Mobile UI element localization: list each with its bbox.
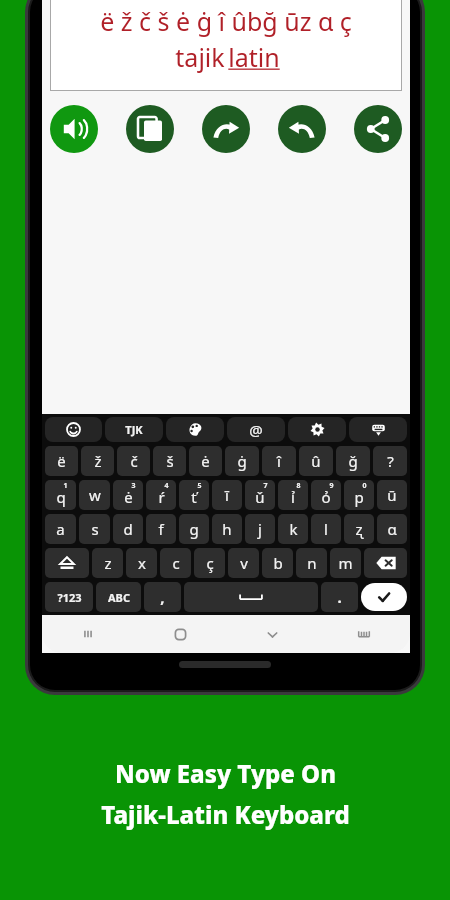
button[interactable]: 5	[179, 480, 209, 510]
staticText: ç	[206, 553, 214, 573]
staticText: s	[91, 519, 99, 539]
staticText: m	[338, 553, 353, 573]
button[interactable]: Emoji	[45, 417, 102, 442]
staticText: ū	[387, 485, 397, 505]
button[interactable]: j	[245, 514, 275, 544]
button[interactable]: z	[92, 548, 123, 578]
button[interactable]: f	[146, 514, 176, 544]
button[interactable]: Settings	[288, 417, 346, 442]
button[interactable]: a	[45, 514, 76, 544]
button[interactable]: 0	[344, 480, 374, 510]
button[interactable]: ğ	[336, 446, 370, 476]
staticText: ʐ	[355, 519, 363, 539]
button[interactable]: 1	[45, 480, 76, 510]
staticText: ABC	[108, 590, 130, 605]
button[interactable]: î	[262, 446, 296, 476]
button[interactable]: At sign	[227, 417, 285, 442]
button[interactable]: ʐ	[344, 514, 374, 544]
staticText: č	[130, 451, 138, 471]
staticText: š	[166, 451, 174, 471]
button[interactable]: Backspace	[364, 548, 407, 578]
staticText: ɑ	[387, 519, 397, 539]
staticText: ǔ	[255, 487, 265, 507]
button[interactable]: h	[212, 514, 242, 544]
button[interactable]: ġ	[225, 446, 259, 476]
staticText: 8	[296, 481, 301, 491]
staticText: ž	[94, 451, 102, 471]
staticText: ŕ	[158, 487, 165, 507]
button[interactable]: Speak	[50, 105, 98, 153]
button[interactable]: ž	[81, 446, 114, 476]
button[interactable]: b	[262, 548, 293, 578]
button[interactable]: ī	[212, 480, 242, 510]
button[interactable]: ė	[189, 446, 222, 476]
button[interactable]: ɑ	[377, 514, 407, 544]
staticText: ?123	[57, 590, 82, 605]
staticText: ġ	[237, 451, 247, 471]
button[interactable]: x	[126, 548, 157, 578]
staticText: ğ	[348, 451, 358, 471]
button[interactable]: 8	[278, 480, 308, 510]
button[interactable]: k	[278, 514, 308, 544]
staticText: ī	[225, 485, 229, 505]
button[interactable]: ū	[377, 480, 407, 510]
button[interactable]: w	[79, 480, 110, 510]
button[interactable]: Redo	[202, 105, 250, 153]
button[interactable]: s	[79, 514, 110, 544]
button[interactable]: Theme	[166, 417, 224, 442]
staticText: ť	[191, 487, 197, 507]
button[interactable]: Back	[226, 615, 318, 653]
button[interactable]: 4	[146, 480, 176, 510]
staticText: k	[289, 519, 298, 539]
button[interactable]: 3	[113, 480, 143, 510]
button[interactable]: v	[228, 548, 259, 578]
button[interactable]: Share	[354, 105, 402, 153]
button[interactable]: Hide keyboard	[349, 417, 407, 442]
button[interactable]: Period	[321, 582, 358, 612]
button[interactable]: 9	[311, 480, 341, 510]
staticText: p	[354, 487, 364, 507]
button[interactable]: ë ž č š ė ġ î ûbğ ūz ɑ ç	[50, 0, 402, 91]
button[interactable]: 7	[245, 480, 275, 510]
button[interactable]: n	[296, 548, 327, 578]
staticText: a	[56, 519, 65, 539]
staticText: z	[104, 553, 112, 573]
button[interactable]: Enter	[361, 583, 407, 611]
staticText: j	[258, 519, 262, 539]
button[interactable]: l	[311, 514, 341, 544]
staticText: ë ž č š ė ġ î ûbğ ūz ɑ ç	[100, 4, 352, 38]
staticText: n	[307, 553, 317, 573]
button[interactable]: Shift	[45, 548, 89, 578]
staticText: f	[158, 519, 164, 539]
staticText: ë	[57, 451, 66, 471]
button[interactable]: Symbols	[45, 582, 93, 612]
staticText: 1	[63, 481, 68, 491]
button[interactable]: ?	[373, 446, 407, 476]
button[interactable]: Copy	[126, 105, 174, 153]
staticText: c	[172, 553, 180, 573]
button[interactable]: d	[113, 514, 143, 544]
button[interactable]: š	[153, 446, 186, 476]
staticText: .	[337, 587, 342, 607]
button[interactable]: ç	[194, 548, 225, 578]
button[interactable]: Recents	[42, 615, 134, 653]
button[interactable]: m	[330, 548, 361, 578]
staticText: w	[89, 485, 101, 505]
staticText: g	[189, 519, 199, 539]
button[interactable]: Undo	[278, 105, 326, 153]
button[interactable]: Language	[105, 417, 163, 442]
button[interactable]: ABC	[96, 582, 141, 612]
staticText: d	[123, 519, 133, 539]
staticText: Now Easy Type On	[115, 757, 336, 790]
button[interactable]: č	[117, 446, 150, 476]
button[interactable]: c	[160, 548, 191, 578]
staticText: ?	[387, 451, 394, 471]
button[interactable]: Comma	[144, 582, 181, 612]
button[interactable]: Space	[184, 582, 318, 612]
button[interactable]: Keyboard	[318, 615, 410, 653]
button[interactable]: ë	[45, 446, 78, 476]
staticText: latin	[228, 40, 280, 74]
button[interactable]: Home	[134, 615, 226, 653]
button[interactable]: g	[179, 514, 209, 544]
button[interactable]: û	[299, 446, 333, 476]
